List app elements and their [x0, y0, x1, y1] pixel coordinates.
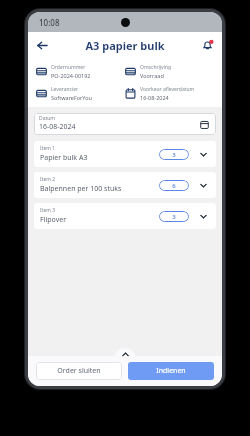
button[interactable]: 3	[159, 211, 189, 222]
staticText: 10:08	[39, 17, 60, 28]
button[interactable]: 3	[159, 149, 189, 160]
staticText: Voorkeur afleverdatum	[140, 86, 195, 93]
staticText: 3	[172, 151, 176, 159]
button[interactable]: Datum	[34, 113, 216, 135]
staticText: 6	[172, 182, 176, 190]
button[interactable]: Notifications	[197, 35, 217, 55]
staticText: 3	[172, 213, 176, 221]
staticText: Papier bulk A3	[40, 153, 88, 163]
staticText: Datum	[39, 115, 56, 122]
staticText: Omschrijving	[140, 64, 172, 71]
button[interactable]: Expand	[197, 148, 210, 161]
staticText: 16-08-2024	[140, 94, 169, 101]
staticText: Indienen	[156, 366, 186, 376]
button[interactable]: Item 2	[34, 172, 216, 198]
staticText: Ordernummer	[51, 64, 86, 71]
staticText: A3 papier bulk	[85, 38, 165, 53]
staticText: 16-08-2024	[39, 122, 76, 132]
staticText: Item 1	[40, 145, 56, 152]
button[interactable]: Expand actions	[114, 348, 136, 359]
button[interactable]: Indienen	[128, 362, 214, 380]
button[interactable]: Expand	[197, 179, 210, 192]
button[interactable]: Expand	[197, 210, 210, 223]
staticText: Voorraad	[140, 72, 164, 79]
button[interactable]: Pick date	[197, 117, 211, 131]
button[interactable]: Item 3	[34, 203, 216, 229]
staticText: PO-2024-00192	[51, 72, 91, 79]
button[interactable]: Order sluiten	[36, 362, 122, 380]
staticText: Flipover	[40, 215, 67, 225]
staticText: Leverancier	[51, 86, 79, 93]
button[interactable]: 6	[159, 180, 189, 191]
staticText: Balpennen per 100 stuks	[40, 184, 122, 194]
button[interactable]: Item 1	[34, 141, 216, 167]
button[interactable]: Back	[32, 35, 52, 55]
staticText: Item 2	[40, 176, 56, 183]
staticText: Order sluiten	[57, 366, 101, 376]
staticText: SoftwareForYou	[51, 94, 92, 101]
staticText: Item 3	[40, 207, 56, 214]
